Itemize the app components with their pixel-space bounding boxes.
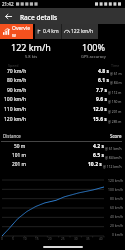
staticText: 110 km/h bbox=[4, 106, 27, 113]
staticText: 120 km/h bbox=[4, 116, 27, 123]
staticText: 40 km/h bbox=[110, 214, 124, 219]
button[interactable]: 80 km/h bbox=[0, 75, 125, 85]
staticText: @ 61 m bbox=[110, 71, 122, 75]
staticText: 5.8 kts bbox=[25, 54, 38, 59]
staticText: @ 112 m bbox=[108, 90, 122, 94]
staticText: 21:42 bbox=[2, 1, 14, 7]
staticText: @ 150 m bbox=[108, 99, 122, 103]
button[interactable]: 110 km/h bbox=[0, 104, 125, 114]
staticText: @ 61 km/h bbox=[105, 146, 122, 150]
staticText: @ 285 m bbox=[108, 119, 122, 123]
staticText: @ 84 m bbox=[110, 80, 122, 84]
staticText: 5 bbox=[12, 237, 14, 241]
staticText: 122 km/h bbox=[71, 28, 94, 35]
staticText: 9.6 s bbox=[96, 96, 107, 103]
staticText: @ 201 m bbox=[108, 109, 122, 113]
button[interactable]: 100 km/h bbox=[0, 94, 125, 104]
staticText: 4.8 s bbox=[98, 68, 109, 75]
staticText: 25 bbox=[61, 237, 65, 241]
staticText: Speed bbox=[8, 63, 19, 68]
staticText: 0.4 km bbox=[43, 28, 59, 35]
staticText: 20 bbox=[48, 237, 52, 241]
button[interactable]: 90 km/h bbox=[0, 85, 125, 95]
staticText: Score bbox=[110, 133, 122, 139]
button[interactable]: 50 m bbox=[0, 142, 125, 151]
staticText: 7.7 s bbox=[96, 87, 107, 94]
staticText: 90 km/h bbox=[7, 87, 27, 94]
staticText: 50 m bbox=[14, 143, 26, 150]
staticText: @ 84 km/h bbox=[105, 155, 122, 159]
staticText: 60 km/h bbox=[110, 205, 124, 210]
staticText: 122 km/h bbox=[11, 41, 51, 53]
staticText: 0 bbox=[1, 237, 3, 241]
staticText: 100% bbox=[82, 41, 105, 53]
button[interactable]: 101 m bbox=[0, 151, 125, 160]
staticText: 12.0 s bbox=[93, 106, 107, 113]
button[interactable]: 122 km/h bbox=[62, 24, 98, 39]
staticText: 10.2 s bbox=[88, 161, 102, 168]
staticText: 120 km/h bbox=[108, 178, 124, 183]
button[interactable]: 0.4 km bbox=[35, 24, 61, 39]
staticText: 100 km/h bbox=[108, 187, 124, 192]
button[interactable]: Back bbox=[0, 8, 16, 24]
staticText: Overview bbox=[12, 25, 33, 39]
staticText: 101 m bbox=[12, 152, 26, 159]
staticText: 201 m bbox=[12, 161, 26, 168]
button[interactable]: 120 km/h bbox=[0, 114, 125, 124]
staticText: 70 km/h bbox=[7, 68, 27, 75]
staticText: 10 bbox=[23, 237, 27, 241]
staticText: Race details bbox=[20, 13, 58, 22]
staticText: 35 bbox=[86, 237, 90, 241]
button[interactable]: 70 km/h bbox=[0, 66, 125, 76]
button[interactable]: Overview bbox=[0, 24, 33, 39]
staticText: 100 km/h bbox=[4, 96, 27, 103]
staticText: 15 bbox=[35, 237, 39, 241]
staticText: 6.5 s bbox=[93, 152, 104, 159]
staticText: 80 km/h bbox=[7, 77, 27, 84]
staticText: 20 km/h bbox=[110, 223, 124, 228]
staticText: @ 112 km/h bbox=[103, 164, 122, 168]
staticText: 0 km/h bbox=[112, 232, 124, 237]
staticText: 6.1 s bbox=[98, 77, 109, 84]
staticText: 30 bbox=[74, 237, 78, 241]
staticText: Time bbox=[111, 63, 120, 68]
staticText: 80 km/h bbox=[110, 196, 124, 201]
staticText: 40 bbox=[99, 237, 103, 241]
staticText: 15.6 s bbox=[93, 116, 107, 123]
staticText: GPS accuracy bbox=[81, 54, 106, 59]
staticText: Distance bbox=[3, 133, 21, 139]
staticText: 4.2 s bbox=[93, 143, 104, 150]
button[interactable]: 201 m bbox=[0, 160, 125, 169]
